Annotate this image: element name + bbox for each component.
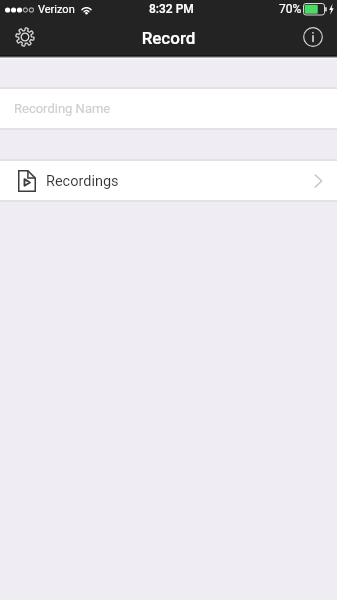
- button[interactable]: Settings: [11, 23, 39, 51]
- staticText: 8:32 PM: [149, 2, 194, 16]
- button[interactable]: Recording Name: [0, 89, 337, 128]
- staticText: Verizon: [38, 3, 75, 16]
- button[interactable]: Info: [299, 23, 327, 51]
- staticText: 70%: [279, 2, 302, 16]
- staticText: Record: [0, 28, 337, 48]
- staticText: Recordings: [46, 173, 119, 190]
- staticText: Recording Name: [14, 101, 111, 116]
- button[interactable]: Recordings: [0, 161, 337, 200]
